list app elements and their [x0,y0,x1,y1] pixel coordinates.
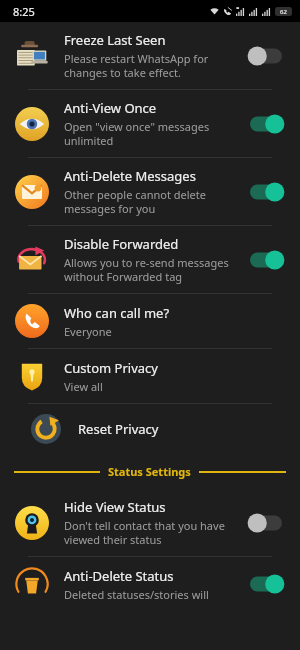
staticText: 62 [280,8,287,16]
button[interactable]: Reset Privacy [0,404,300,454]
staticText: Anti-Delete Status [64,567,174,585]
button[interactable]: Toggle off [246,511,286,535]
button[interactable]: Toggle on [246,248,286,272]
button[interactable]: Hide View Status [0,489,300,556]
staticText: Allows you to re-send messages without F… [64,255,238,284]
staticText: Please restart WhatsApp for changes to t… [64,51,238,80]
staticText: Other people cannot delete messages for … [64,187,238,216]
staticText: Freeze Last Seen [64,31,166,49]
button[interactable]: Disable Forwarded [0,226,300,293]
staticText: Hide View Status [64,498,166,516]
button[interactable]: Anti-View Once [0,90,300,157]
staticText: Deleted statuses/stories will [64,587,209,602]
button[interactable]: Anti-Delete Status [0,557,300,611]
button[interactable]: Freeze Last Seen [0,22,300,89]
staticText: Disable Forwarded [64,235,179,253]
staticText: Everyone [64,324,112,339]
staticText: 8:25 [13,4,35,19]
button[interactable]: Custom Privacy [0,349,300,403]
button[interactable]: Who can call me? [0,294,300,348]
staticText: Who can call me? [64,304,170,322]
staticText: View all [64,379,103,394]
button[interactable]: Toggle on [246,112,286,136]
button[interactable]: Toggle on [246,180,286,204]
button[interactable]: Anti-Delete Messages [0,158,300,225]
staticText: Anti-View Once [64,99,157,117]
staticText: Anti-Delete Messages [64,167,196,185]
staticText: Custom Privacy [64,359,158,377]
staticText: Don't tell contact that you have viewed … [64,518,238,547]
staticText: Status Settings [108,464,191,479]
staticText: Reset Privacy [78,420,159,438]
button[interactable]: Toggle off [246,44,286,68]
button[interactable]: Toggle on [246,572,286,596]
staticText: Open "view once" messages unlimited [64,119,238,148]
